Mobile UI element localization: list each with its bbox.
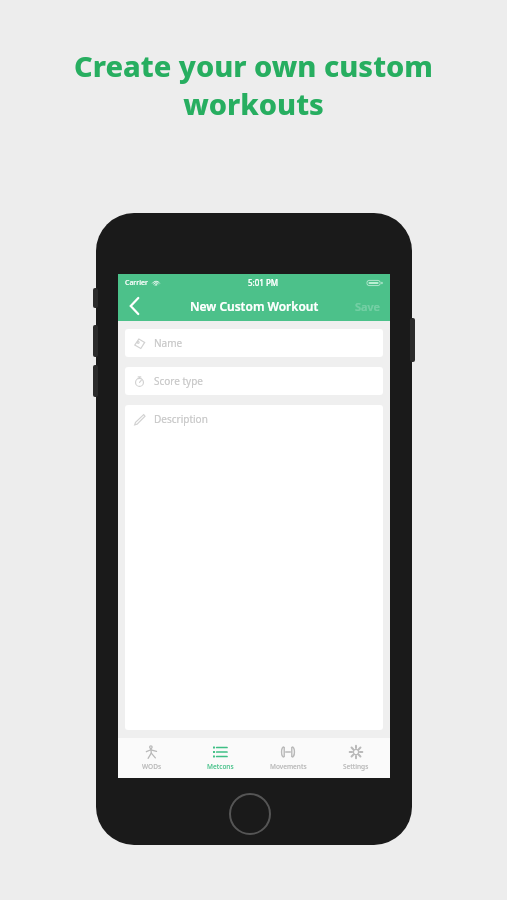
- button[interactable]: Save: [355, 291, 380, 321]
- button[interactable]: Name: [125, 329, 383, 357]
- button[interactable]: Metcons: [186, 738, 254, 778]
- button[interactable]: Back: [118, 291, 150, 321]
- staticText: Metcons: [207, 762, 234, 771]
- staticText: Score type: [154, 374, 204, 388]
- button[interactable]: Settings: [322, 738, 390, 778]
- staticText: Create your own custom workouts: [74, 46, 433, 123]
- staticText: New Custom Workout: [190, 298, 319, 314]
- button[interactable]: WODs: [118, 738, 186, 778]
- staticText: Movements: [270, 762, 307, 771]
- button[interactable]: Home: [229, 793, 271, 835]
- staticText: 5:01 PM: [248, 277, 279, 288]
- staticText: Description: [154, 412, 208, 426]
- staticText: Carrier: [125, 278, 148, 288]
- staticText: WODs: [142, 762, 162, 771]
- staticText: Name: [154, 336, 183, 350]
- staticText: Save: [355, 299, 380, 314]
- staticText: Settings: [343, 762, 369, 771]
- button[interactable]: Movements: [254, 738, 322, 778]
- button[interactable]: Score type: [125, 367, 383, 395]
